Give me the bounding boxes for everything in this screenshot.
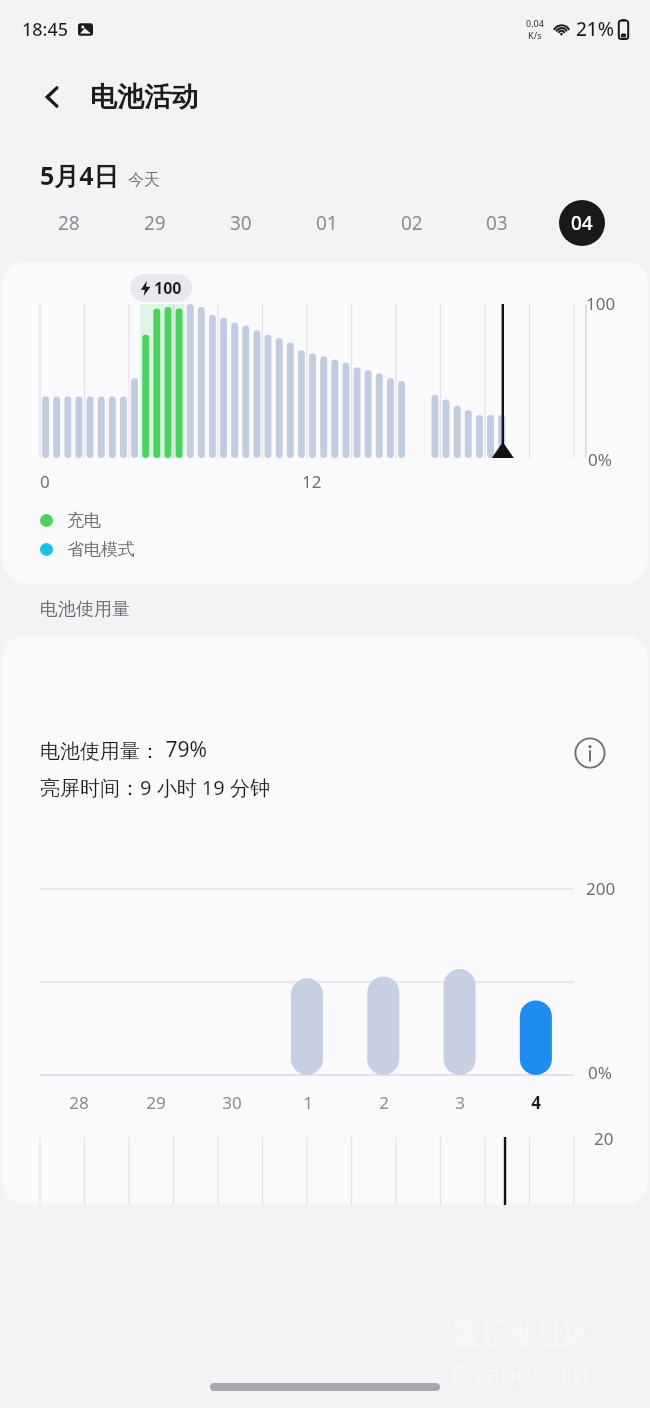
staticText: 5月4日 [40,158,119,192]
staticText: 电池使用量： [40,739,160,764]
staticText: 30 [230,210,252,236]
staticText: 电池活动 [90,80,198,114]
button[interactable]: 01 [284,195,369,251]
staticText: 3 [455,1091,465,1114]
staticText: 02 [401,210,423,236]
staticText: 今天 [128,170,160,190]
staticText: 省电模式 [67,539,135,560]
button[interactable]: 03 [454,195,539,251]
staticText: 01 [316,210,338,236]
staticText: 0 [40,470,50,493]
staticText: 21% [576,16,614,42]
staticText: 1 [303,1091,313,1114]
button[interactable]: 04 [539,195,624,251]
staticText: 28 [69,1091,89,1114]
staticText: 18:45 [22,17,69,42]
staticText: 0% [588,448,612,471]
button[interactable]: 30 [198,195,284,251]
staticText: 2 [379,1091,389,1114]
staticText: 充电 [67,510,101,531]
staticText: 30 [222,1091,242,1114]
staticText: 04 [571,210,593,236]
staticText: 29 [146,1091,166,1114]
staticText: 0% [588,1061,612,1084]
staticText: 电池使用量 [40,598,130,621]
staticText: 03 [486,210,508,236]
staticText: 200 [586,877,616,900]
staticText: 79% [160,735,207,764]
staticText: 0.04 [526,17,544,29]
button[interactable]: Info [568,731,612,775]
staticText: 100 [154,277,182,299]
button[interactable]: Info [2,635,648,1205]
button[interactable]: 28 [26,195,112,251]
staticText: 4 [531,1091,541,1114]
staticText: 29 [144,210,166,236]
button[interactable]: 02 [369,195,454,251]
staticText: 亮屏时间：9 小时 19 分钟 [40,774,270,801]
staticText: 20 [594,1127,614,1150]
staticText: 28 [58,210,80,236]
button[interactable]: 29 [112,195,198,251]
button[interactable]: Back [30,74,76,120]
staticText: 12 [302,470,322,493]
staticText: 100 [586,292,616,315]
button[interactable]: 100 [2,262,648,584]
staticText: K/s [528,29,542,41]
